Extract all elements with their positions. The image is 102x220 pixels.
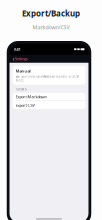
staticText: 9:41 (13, 47, 20, 52)
button[interactable]: Export CSV (12, 101, 85, 109)
staticText: FORMATS (15, 88, 26, 91)
staticText: Save your notes as a Markdown bundle or … (15, 75, 79, 82)
button[interactable]: ‹ (9, 55, 88, 63)
staticText: ‹ (12, 54, 14, 63)
staticText: Settings (15, 56, 28, 61)
staticText: Export Markdown (15, 94, 46, 99)
staticText: Export CSV (15, 102, 34, 108)
staticText: Export/Backup (22, 8, 80, 19)
staticText: Markdown/CSV (32, 24, 69, 31)
staticText: Manual (15, 68, 30, 73)
button[interactable]: Export Markdown (12, 93, 85, 101)
